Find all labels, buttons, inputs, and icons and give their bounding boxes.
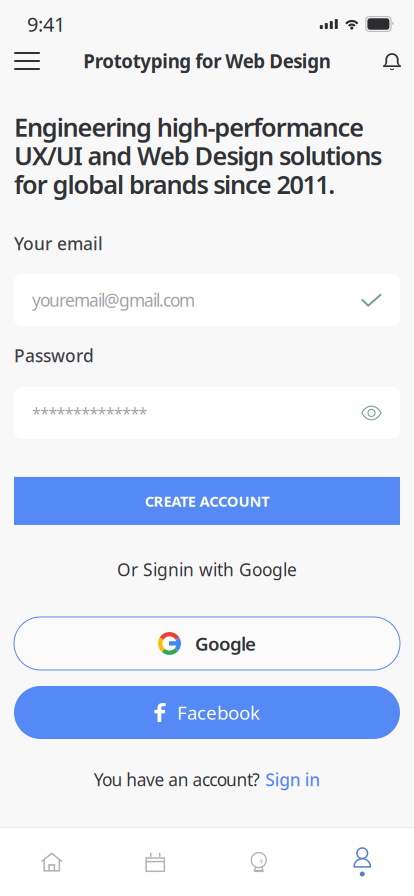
button[interactable]: Facebook bbox=[14, 686, 400, 739]
button[interactable]: Ideas bbox=[207, 836, 310, 888]
staticText: youremail@gmail.com bbox=[32, 288, 195, 311]
staticText: Sign in bbox=[265, 768, 320, 791]
staticText: Engineering high-performance UX/UI and W… bbox=[14, 110, 382, 201]
button[interactable]: Calendar bbox=[103, 836, 207, 888]
staticText: Google bbox=[195, 631, 256, 656]
button[interactable]: Home bbox=[0, 836, 103, 888]
staticText: CREATE ACCOUNT bbox=[145, 491, 269, 511]
button[interactable]: Profile bbox=[310, 836, 414, 888]
button[interactable]: Sign in bbox=[265, 768, 320, 791]
staticText: Or Signin with Google bbox=[117, 558, 297, 581]
staticText: ************** bbox=[32, 402, 148, 423]
staticText: Prototyping for Web Design bbox=[83, 49, 331, 73]
button[interactable]: Notifications bbox=[372, 40, 412, 82]
staticText: 9:41 bbox=[27, 11, 65, 37]
staticText: Your email bbox=[14, 232, 103, 255]
button[interactable]: CREATE ACCOUNT bbox=[14, 477, 400, 525]
staticText: You have an account? bbox=[94, 768, 260, 791]
button[interactable]: Menu bbox=[6, 40, 48, 82]
button[interactable]: Google bbox=[14, 617, 400, 670]
button[interactable]: Show password bbox=[361, 405, 382, 420]
staticText: Password bbox=[14, 344, 94, 367]
staticText: Facebook bbox=[177, 700, 260, 725]
